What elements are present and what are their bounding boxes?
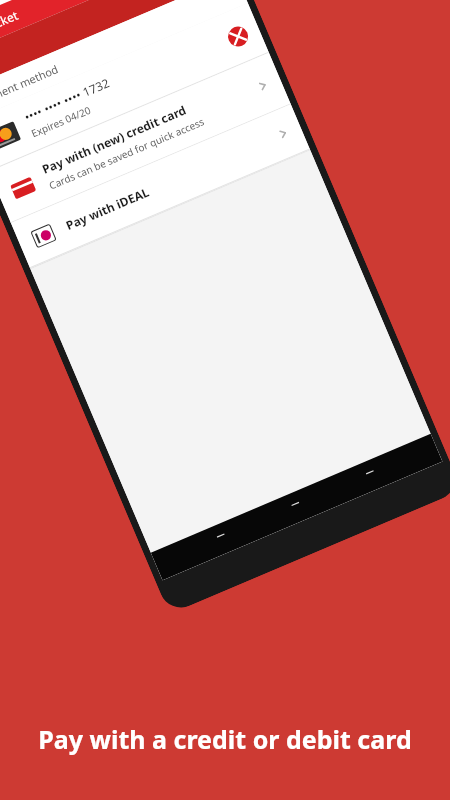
button[interactable]: Back: [209, 526, 235, 552]
button[interactable]: Pay with iDEAL: [11, 104, 310, 268]
staticText: Cards can be saved for quick access: [47, 114, 207, 192]
button[interactable]: Recents: [358, 462, 384, 488]
staticText: Total: [0, 0, 184, 81]
button[interactable]: Pay with (new) credit card: [0, 53, 291, 223]
staticText: 2 hour Ticket: [0, 0, 160, 50]
staticText: Pay with iDEAL: [63, 183, 151, 233]
staticText: Pay with (new) credit card: [39, 102, 188, 177]
staticText: Expires 04/20: [29, 102, 93, 140]
staticText: Pay with a credit or debit card: [0, 722, 450, 756]
button[interactable]: Total: [0, 0, 236, 93]
button[interactable]: •••• •••• •••• 1732: [0, 3, 269, 172]
staticText: Payment method: [0, 61, 61, 110]
staticText: •••• •••• •••• 1732: [22, 74, 112, 125]
button[interactable]: Delete saved card: [225, 23, 251, 50]
button[interactable]: Home: [283, 494, 310, 520]
button[interactable]: 2 hour Ticket: [0, 0, 223, 62]
